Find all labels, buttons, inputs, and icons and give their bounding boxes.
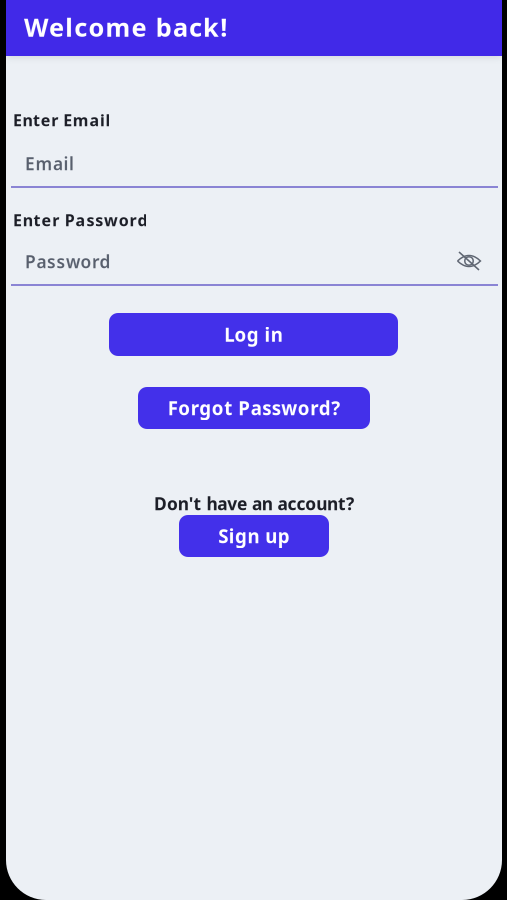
staticText: Forgot Password?	[168, 396, 340, 420]
staticText: Enter Email	[13, 109, 110, 131]
staticText: Enter Password	[13, 209, 147, 231]
staticText: Don't have an account?	[154, 492, 354, 515]
button[interactable]: Log in	[109, 313, 398, 356]
button[interactable]: Email	[11, 144, 503, 188]
staticText: Log in	[224, 322, 283, 347]
staticText: Password	[25, 250, 110, 273]
staticText: Welcome back!	[24, 10, 227, 44]
button[interactable]: Password	[11, 242, 503, 286]
staticText: Sign up	[218, 524, 290, 548]
button[interactable]: Sign up	[179, 515, 329, 557]
staticText: Email	[25, 152, 74, 175]
button[interactable]: Forgot Password?	[138, 387, 370, 429]
